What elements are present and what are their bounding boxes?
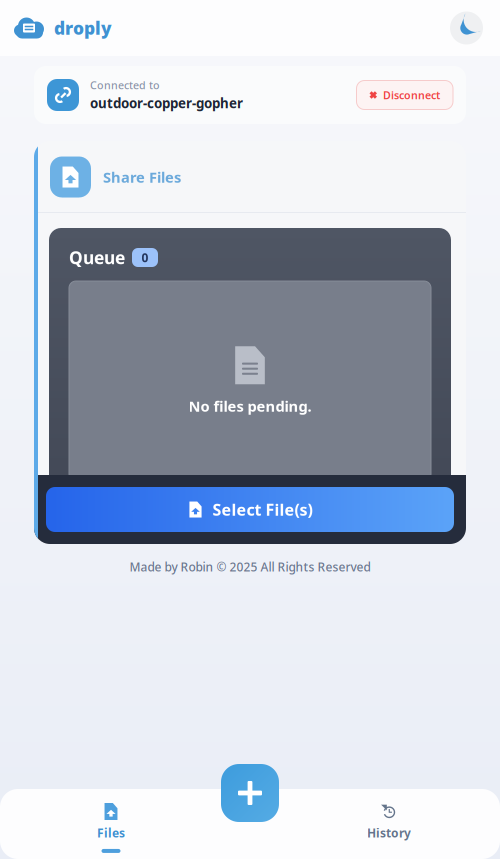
staticText: Connected to [90,78,160,92]
staticText: History [367,825,411,841]
button[interactable]: History [278,789,500,859]
staticText: Queue [69,246,125,269]
staticText: No files pending. [188,396,311,416]
button[interactable]: Disconnect [356,80,453,109]
button[interactable]: Files [0,789,222,859]
staticText: Disconnect [383,88,440,102]
button[interactable]: Toggle dark mode [450,11,483,44]
button[interactable]: Select File(s) [46,487,454,532]
staticText: 0 [141,249,148,265]
staticText: outdoor-copper-gopher [90,94,243,112]
button[interactable]: Add [221,764,279,822]
staticText: Made by Robin © 2025 All Rights Reserved [129,559,370,575]
staticText: droply [54,16,112,39]
staticText: Select File(s) [212,499,312,520]
staticText: Files [97,825,125,841]
staticText: Share Files [103,167,181,187]
